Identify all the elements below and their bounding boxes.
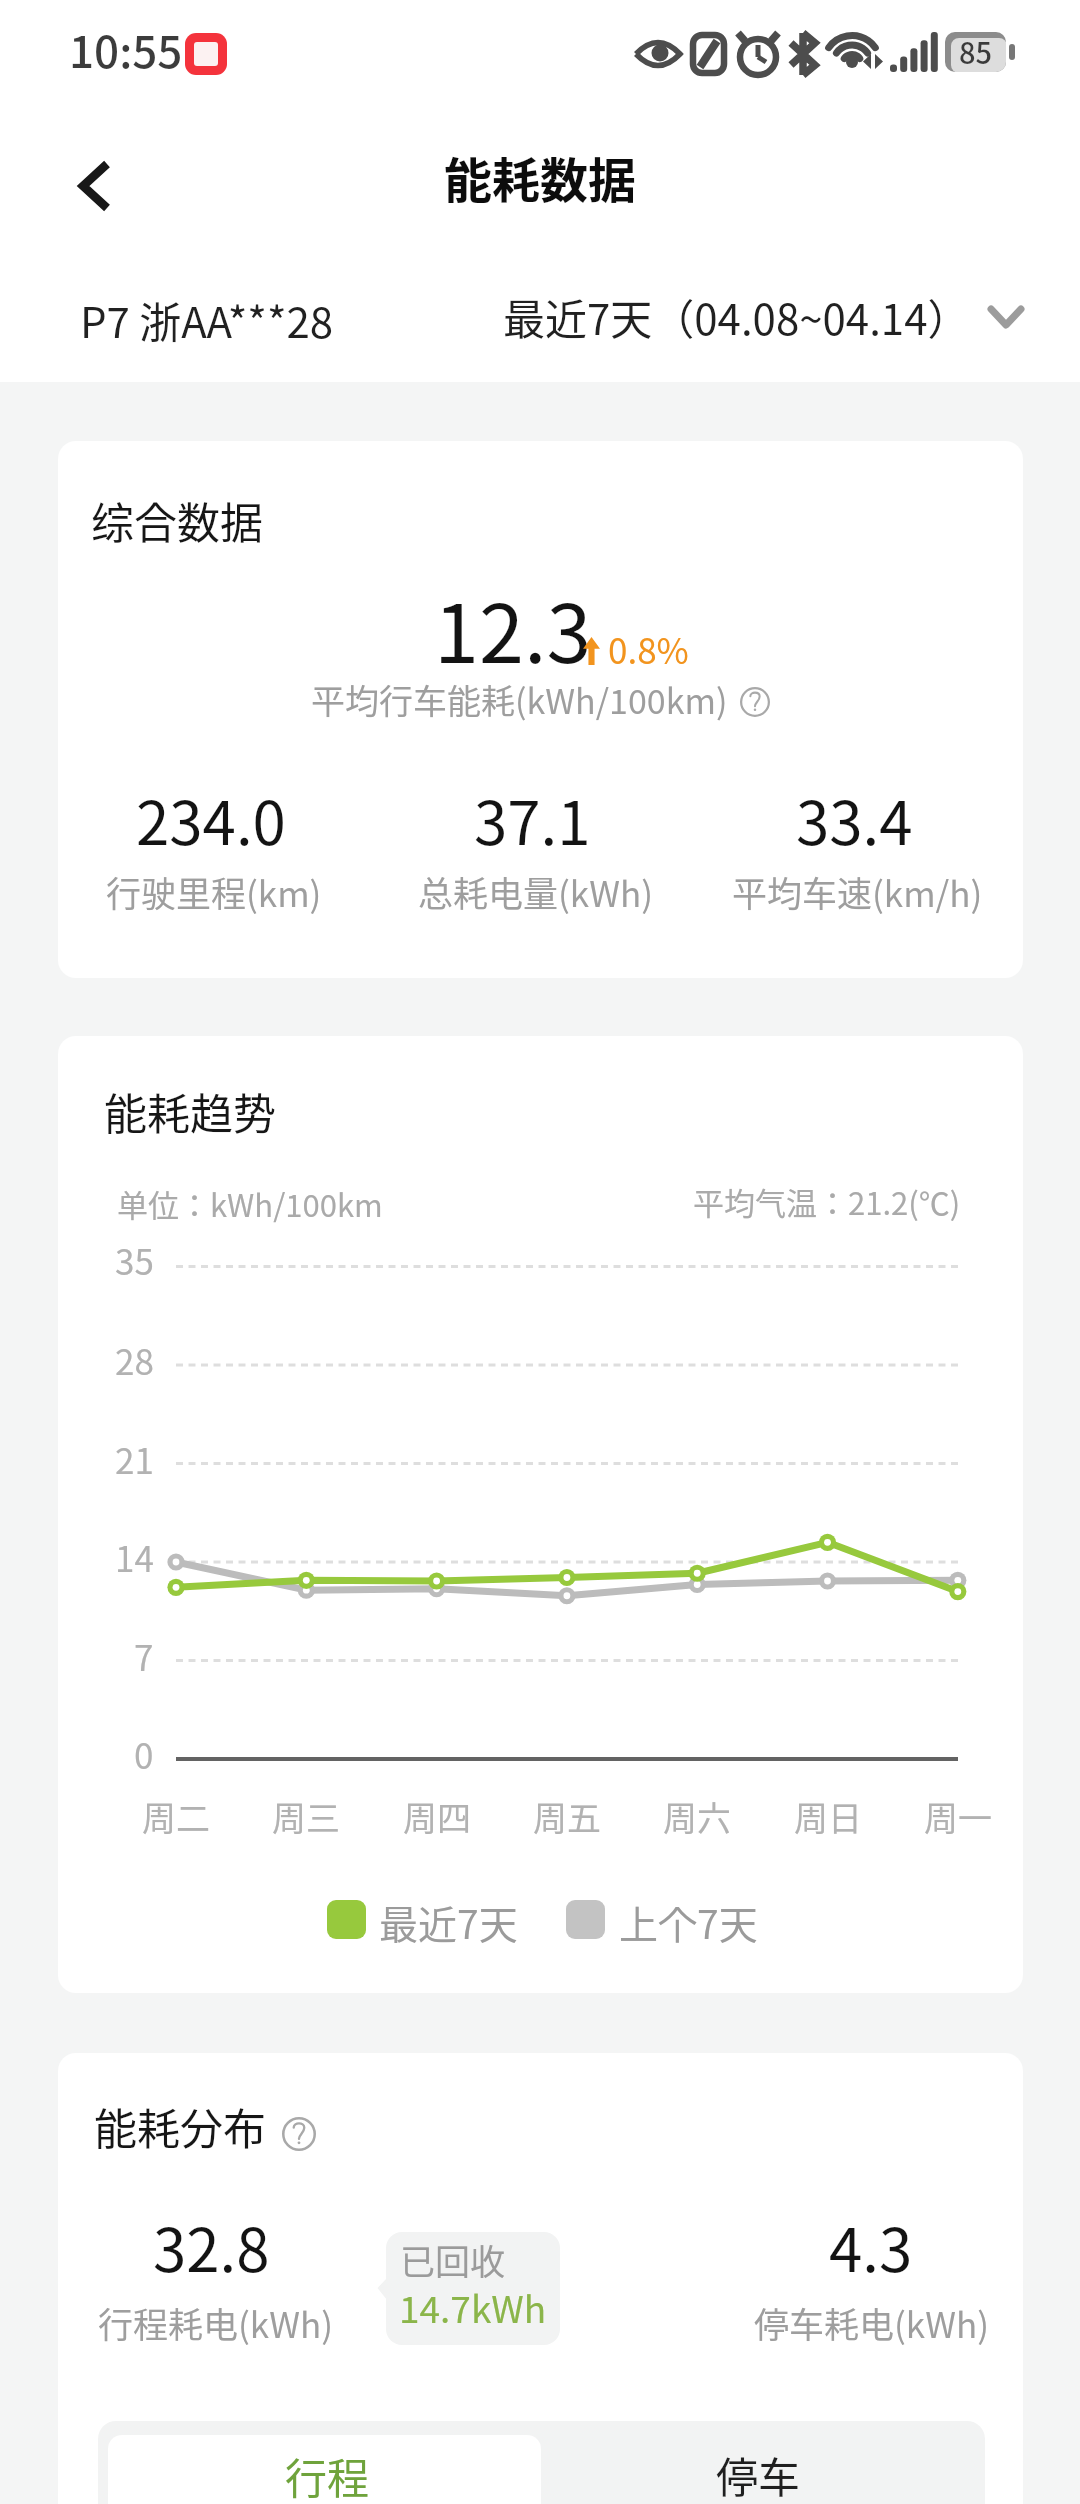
staticText: 周五 bbox=[533, 1792, 601, 1841]
staticText: 已回收 bbox=[400, 2234, 506, 2285]
staticText: 7 bbox=[134, 1630, 154, 1681]
staticText: 周日 bbox=[794, 1792, 862, 1841]
staticText: 平均气温：21.2(℃) bbox=[693, 1179, 961, 1224]
staticText: 能耗趋势 bbox=[104, 1080, 276, 1142]
staticText: 周二 bbox=[142, 1792, 210, 1841]
staticText: 能耗数据 bbox=[444, 142, 637, 212]
staticText: 最近7天 bbox=[379, 1894, 518, 1950]
staticText: 单位：kWh/100km bbox=[117, 1181, 383, 1226]
staticText: 12.3 bbox=[434, 569, 592, 686]
staticText: 行驶里程(km) bbox=[106, 866, 322, 917]
staticText: 停车耗电(kWh) bbox=[754, 2297, 989, 2348]
staticText: 行程耗电(kWh) bbox=[98, 2297, 333, 2348]
staticText: 综合数据 bbox=[91, 489, 263, 551]
staticText: 周一 bbox=[924, 1792, 992, 1841]
staticText: 停车 bbox=[716, 2444, 801, 2504]
staticText: 行程 bbox=[285, 2445, 370, 2504]
staticText: 平均行车能耗(kWh/100km) bbox=[311, 675, 728, 724]
staticText: 4.3 bbox=[829, 2202, 913, 2289]
staticText: 28 bbox=[115, 1334, 154, 1385]
staticText: 32.8 bbox=[153, 2202, 270, 2289]
staticText: 35 bbox=[115, 1234, 154, 1285]
staticText: 234.0 bbox=[136, 775, 286, 862]
staticText: P7 浙AA***28 bbox=[80, 289, 334, 350]
staticText: 周六 bbox=[663, 1792, 731, 1841]
staticText: 37.1 bbox=[474, 775, 591, 862]
staticText: 85 bbox=[959, 32, 993, 70]
button[interactable]: 返回 bbox=[38, 130, 150, 242]
staticText: 14 bbox=[115, 1531, 154, 1582]
staticText: 21 bbox=[115, 1433, 154, 1484]
staticText: 0 bbox=[134, 1728, 154, 1779]
button[interactable]: 停车 bbox=[541, 2421, 985, 2504]
staticText: 10:55 bbox=[69, 17, 183, 81]
staticText: 总耗电量(kWh) bbox=[418, 866, 653, 917]
staticText: 周四 bbox=[403, 1792, 471, 1841]
button[interactable]: 行程 bbox=[108, 2435, 541, 2504]
staticText: 0.8% bbox=[608, 623, 689, 674]
staticText: 能耗分布 bbox=[94, 2095, 266, 2157]
staticText: 最近7天（04.08~04.14） bbox=[503, 286, 970, 347]
button[interactable]: 最近7天（04.08~04.14） bbox=[495, 276, 1032, 357]
staticText: 周三 bbox=[272, 1792, 340, 1841]
staticText: 14.7kWh bbox=[399, 2280, 547, 2334]
staticText: 33.4 bbox=[796, 775, 913, 862]
staticText: 平均车速(km/h) bbox=[732, 866, 983, 917]
staticText: 上个7天 bbox=[619, 1894, 758, 1950]
